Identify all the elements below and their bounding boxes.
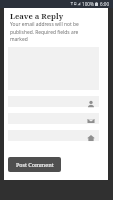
button[interactable]: Name: [8, 96, 99, 107]
other: Name: [87, 100, 95, 108]
staticText: 100%: [82, 1, 94, 7]
staticText: Your email address will not be published…: [10, 21, 81, 42]
other: Email: [87, 117, 95, 125]
button[interactable]: Website: [8, 130, 99, 141]
staticText: Post Comment: [16, 161, 54, 168]
other: Website: [87, 134, 95, 142]
button[interactable]: Post Comment: [8, 157, 61, 172]
staticText: 6:00: [100, 1, 110, 7]
staticText: Leave a Reply: [10, 11, 64, 21]
button[interactable]: Email: [8, 113, 99, 124]
